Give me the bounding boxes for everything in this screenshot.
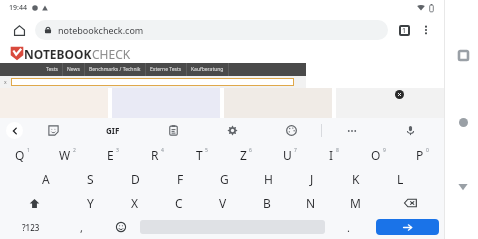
staticText: K — [352, 171, 360, 187]
button[interactable]: L — [378, 167, 422, 191]
button[interactable]: R — [135, 143, 180, 167]
button[interactable]: More — [322, 118, 381, 143]
button[interactable]: Externe Tests — [146, 63, 186, 76]
button[interactable]: F — [158, 167, 202, 191]
button[interactable]: Clipboard — [143, 118, 203, 143]
button[interactable]: K — [334, 167, 378, 191]
button[interactable]: . — [325, 215, 371, 239]
staticText: 5 — [205, 147, 208, 154]
button[interactable]: C — [157, 191, 201, 215]
button[interactable]: Close ad — [395, 90, 404, 99]
button[interactable]: J — [290, 167, 334, 191]
staticText: 0 — [426, 147, 429, 154]
button[interactable]: P — [400, 143, 444, 167]
staticText: Y — [87, 195, 94, 211]
staticText: I — [329, 147, 334, 163]
button[interactable]: Shift — [0, 191, 68, 215]
staticText: U — [283, 147, 292, 163]
staticText: 8 — [336, 147, 339, 154]
staticText: 1 — [402, 26, 407, 36]
button[interactable]: U — [268, 143, 312, 167]
staticText: O — [371, 147, 381, 163]
staticText: N — [306, 195, 316, 211]
staticText: G — [220, 171, 229, 187]
button[interactable]: E — [90, 143, 135, 167]
staticText: B — [263, 195, 271, 211]
staticText: P — [416, 147, 424, 163]
button[interactable]: G — [202, 167, 246, 191]
button[interactable]: notebookcheck.com — [35, 20, 388, 40]
staticText: CHECK — [92, 46, 131, 62]
button[interactable]: Q — [0, 143, 45, 167]
staticText: R — [151, 147, 159, 163]
staticText: ?123 — [22, 222, 40, 233]
button[interactable]: X — [113, 191, 157, 215]
button[interactable]: H — [246, 167, 290, 191]
button[interactable]: News — [63, 63, 84, 76]
staticText: A — [42, 171, 50, 187]
button[interactable]: Themes — [262, 118, 321, 143]
button[interactable]: Backspace — [377, 191, 444, 215]
staticText: 1 — [27, 147, 30, 154]
button[interactable]: Tests — [42, 63, 62, 76]
staticText: S — [87, 171, 94, 187]
button[interactable]: , — [62, 215, 101, 239]
staticText: E — [107, 147, 114, 163]
staticText: X — [131, 195, 139, 211]
staticText: . — [347, 220, 350, 235]
staticText: Kaufberatung — [191, 66, 224, 73]
staticText: Tests — [46, 66, 58, 73]
button[interactable]: S — [68, 167, 113, 191]
button[interactable]: Y — [68, 191, 113, 215]
staticText: J — [310, 171, 314, 187]
button[interactable]: Settings — [203, 118, 262, 143]
staticText: 4 — [161, 147, 164, 154]
staticText: W — [59, 147, 71, 163]
button[interactable]: Tabs — [394, 20, 414, 40]
staticText: M — [350, 195, 361, 211]
staticText: News — [67, 66, 80, 73]
staticText: 9 — [383, 147, 386, 154]
staticText: L — [397, 171, 404, 187]
button[interactable]: Stickers — [23, 118, 83, 143]
button[interactable]: Z — [224, 143, 268, 167]
staticText: notebookcheck.com — [58, 24, 144, 36]
button[interactable]: V — [201, 191, 245, 215]
button[interactable]: Voice input — [381, 118, 440, 143]
button[interactable]: Home — [8, 19, 30, 41]
staticText: 3 — [116, 147, 119, 154]
button[interactable]: Back — [6, 122, 23, 139]
button[interactable]: Kaufberatung — [187, 63, 228, 76]
button[interactable]: Emoji — [101, 215, 140, 239]
staticText: x — [4, 79, 7, 86]
button[interactable]: T — [180, 143, 224, 167]
button[interactable]: Back — [452, 176, 474, 198]
button[interactable]: N — [289, 191, 333, 215]
button[interactable]: D — [113, 167, 158, 191]
button[interactable]: A — [23, 167, 68, 191]
staticText: V — [219, 195, 227, 211]
button[interactable]: I — [312, 143, 356, 167]
button[interactable]: O — [356, 143, 400, 167]
button[interactable]: GIF — [83, 118, 143, 143]
staticText: NOTEBOOK — [24, 46, 92, 62]
staticText: Benchmarks / Technik — [89, 66, 141, 73]
staticText: T — [196, 147, 203, 163]
staticText: F — [177, 171, 184, 187]
button[interactable]: ?123 — [0, 215, 62, 239]
staticText: 2 — [73, 147, 76, 154]
staticText: Q — [15, 147, 25, 163]
button[interactable]: Home — [452, 111, 474, 133]
button[interactable]: M — [333, 191, 377, 215]
button[interactable]: Benchmarks / Technik — [85, 63, 145, 76]
staticText: , — [80, 220, 83, 235]
staticText: Z — [240, 147, 247, 163]
button[interactable]: Recent apps — [452, 44, 474, 66]
staticText: 19:44 — [9, 3, 27, 13]
staticText: D — [131, 171, 140, 187]
button[interactable]: More options — [416, 20, 436, 40]
button[interactable]: Enter — [376, 219, 439, 235]
button[interactable]: B — [245, 191, 289, 215]
button[interactable]: W — [45, 143, 90, 167]
